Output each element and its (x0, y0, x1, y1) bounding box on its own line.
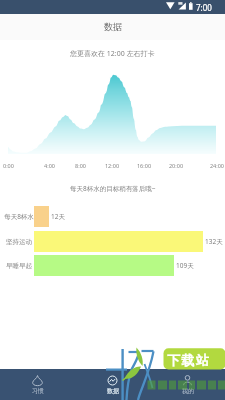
staticText: 132天 (205, 237, 223, 246)
staticText: 您更喜欢在 12:00 左右打卡 (70, 49, 155, 59)
staticText: 坚持运动 (2, 238, 36, 246)
staticText: 24:00 (192, 162, 224, 169)
staticText: 数据 (104, 21, 122, 32)
staticText: 我的 (182, 387, 194, 395)
staticText: 每天8杯水 (2, 212, 36, 221)
staticText: 12天 (51, 212, 65, 221)
button[interactable]: 习惯 (0, 369, 75, 400)
staticText: 习惯 (32, 387, 44, 395)
staticText: 4:00 (34, 162, 65, 169)
staticText: 0:00 (3, 162, 34, 169)
staticText: 早睡早起 (2, 262, 36, 270)
staticText: 109天 (176, 261, 194, 270)
staticText: 12:00 (96, 162, 128, 169)
staticText: 20:00 (160, 162, 192, 169)
button[interactable]: 数据 (75, 369, 150, 400)
staticText: 数据 (107, 387, 119, 395)
staticText: 8:00 (65, 162, 96, 169)
staticText: 每天8杯水的目标稍有落后哦~ (70, 184, 156, 193)
staticText: 16:00 (128, 162, 160, 169)
staticText: 下载站 (167, 352, 211, 368)
staticText: 7:00 (196, 2, 212, 13)
button[interactable]: 我的 (150, 369, 225, 400)
